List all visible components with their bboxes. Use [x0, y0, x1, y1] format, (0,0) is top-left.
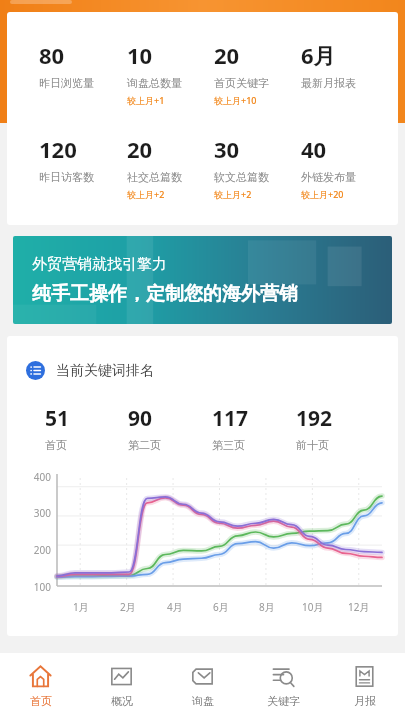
staticText: 80: [39, 40, 65, 70]
staticText: 首页关键字: [214, 76, 269, 90]
staticText: 较上月+20: [301, 188, 344, 200]
staticText: 昨日访客数: [39, 170, 94, 184]
staticText: 月报: [354, 694, 376, 708]
staticText: 10: [127, 40, 153, 70]
staticText: 117: [212, 404, 249, 433]
staticText: 关键字: [267, 694, 300, 708]
staticText: 120: [39, 134, 77, 164]
staticText: 首页: [45, 438, 67, 452]
staticText: 昨日浏览量: [39, 76, 94, 90]
button[interactable]: 当前关键词排名: [26, 361, 154, 380]
button[interactable]: 询盘: [162, 653, 243, 720]
staticText: 6月: [213, 600, 229, 614]
button[interactable]: 外贸营销就找引擎力: [13, 236, 392, 324]
staticText: 20: [127, 134, 153, 164]
staticText: 100: [15, 580, 51, 594]
staticText: 社交总篇数: [127, 170, 182, 184]
staticText: 前十页: [296, 438, 329, 452]
staticText: 较上月+1: [127, 94, 165, 106]
staticText: 40: [301, 134, 327, 164]
staticText: 询盘总数量: [127, 76, 182, 90]
staticText: 10月: [302, 600, 324, 614]
staticText: 192: [296, 404, 333, 433]
staticText: 6月: [301, 40, 336, 70]
staticText: 2月: [120, 600, 136, 614]
staticText: 20: [214, 40, 240, 70]
button[interactable]: 关键字: [243, 653, 324, 720]
staticText: 纯手工操作，定制您的海外营销: [32, 282, 298, 306]
staticText: 第三页: [212, 438, 245, 452]
staticText: 1月: [73, 600, 89, 614]
staticText: 200: [15, 543, 51, 557]
staticText: 51: [45, 404, 70, 433]
staticText: 12月: [348, 600, 370, 614]
staticText: 首页: [30, 694, 52, 708]
staticText: 软文总篇数: [214, 170, 269, 184]
staticText: 400: [15, 470, 51, 484]
staticText: 外链发布量: [301, 170, 356, 184]
staticText: 300: [15, 506, 51, 520]
staticText: 8月: [259, 600, 275, 614]
button[interactable]: 概况: [81, 653, 162, 720]
staticText: 第二页: [128, 438, 161, 452]
staticText: 4月: [167, 600, 183, 614]
staticText: 询盘: [192, 694, 214, 708]
staticText: 较上月+10: [214, 94, 257, 106]
staticText: 外贸营销就找引擎力: [32, 255, 167, 274]
staticText: 较上月+2: [214, 188, 252, 200]
button[interactable]: 月报: [324, 653, 405, 720]
button[interactable]: 首页: [0, 653, 81, 720]
staticText: 最新月报表: [301, 76, 356, 90]
staticText: 90: [128, 404, 153, 433]
staticText: 当前关键词排名: [56, 362, 154, 380]
staticText: 较上月+2: [127, 188, 165, 200]
staticText: 30: [214, 134, 240, 164]
staticText: 概况: [111, 694, 133, 708]
